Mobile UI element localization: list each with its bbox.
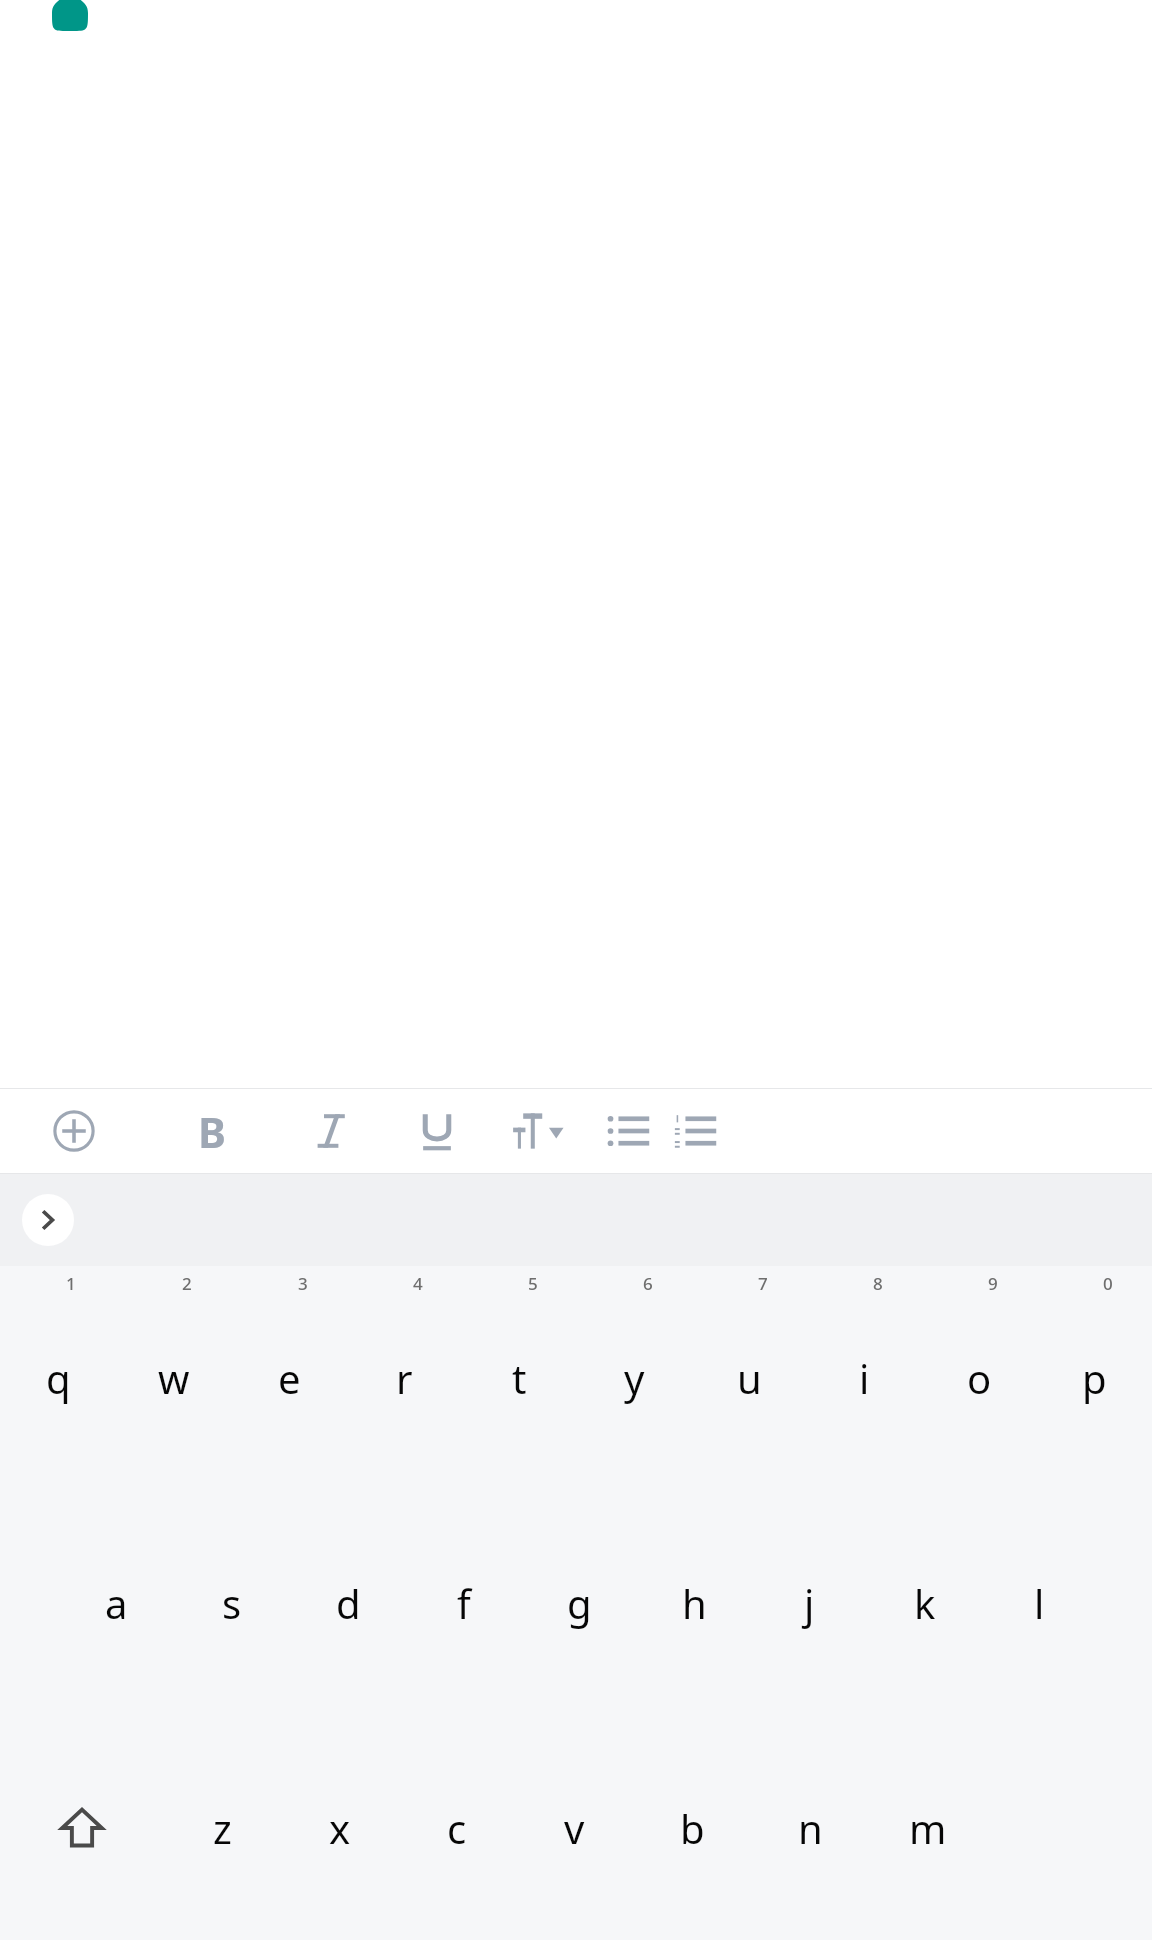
button[interactable]: e	[232, 1266, 347, 1490]
staticText: 1	[66, 1272, 76, 1295]
staticText: e	[278, 1351, 301, 1405]
button[interactable]: More suggestions	[22, 1194, 74, 1246]
staticText: 7	[758, 1272, 768, 1295]
button[interactable]: Underline	[388, 1089, 486, 1173]
staticText: a	[105, 1576, 128, 1630]
staticText: h	[682, 1576, 707, 1630]
button[interactable]: l	[982, 1490, 1097, 1715]
button[interactable]: Shift	[0, 1715, 164, 1940]
staticText: t	[512, 1351, 527, 1405]
button[interactable]: Bulleted list	[593, 1089, 665, 1173]
staticText: 2	[182, 1272, 192, 1295]
staticText: w	[158, 1351, 190, 1405]
staticText: r	[396, 1351, 413, 1405]
staticText: v	[564, 1801, 585, 1855]
staticText: 8	[873, 1272, 883, 1295]
button[interactable]: p	[1037, 1266, 1152, 1490]
staticText: b	[680, 1801, 705, 1855]
button[interactable]: z	[164, 1715, 281, 1940]
staticText: z	[213, 1801, 232, 1855]
staticText: j	[804, 1576, 815, 1630]
staticText: i	[859, 1351, 870, 1405]
button[interactable]: w	[116, 1266, 232, 1490]
staticText: p	[1082, 1351, 1107, 1405]
button[interactable]: n	[751, 1715, 869, 1940]
button[interactable]: f	[406, 1490, 522, 1715]
button[interactable]: y	[577, 1266, 692, 1490]
button[interactable]: Text size	[486, 1089, 593, 1173]
button[interactable]: c	[398, 1715, 515, 1940]
button[interactable]: u	[692, 1266, 807, 1490]
staticText: x	[329, 1801, 351, 1855]
staticText: 5	[528, 1272, 538, 1295]
staticText: s	[222, 1576, 242, 1630]
staticText: 9	[988, 1272, 998, 1295]
staticText: 0	[1103, 1272, 1113, 1295]
button[interactable]: o	[922, 1266, 1037, 1490]
button[interactable]: a	[58, 1490, 174, 1715]
staticText: 6	[643, 1272, 653, 1295]
button[interactable]: q	[0, 1266, 116, 1490]
button[interactable]: m	[869, 1715, 987, 1940]
staticText: f	[457, 1576, 471, 1630]
button[interactable]: k	[867, 1490, 982, 1715]
button[interactable]: j	[752, 1490, 867, 1715]
staticText: g	[567, 1576, 592, 1630]
button[interactable]: h	[637, 1490, 752, 1715]
staticText: k	[914, 1576, 936, 1630]
button[interactable]: r	[347, 1266, 462, 1490]
staticText: q	[46, 1351, 71, 1405]
button[interactable]: b	[633, 1715, 751, 1940]
button[interactable]: t	[462, 1266, 577, 1490]
button[interactable]: d	[290, 1490, 406, 1715]
staticText: d	[336, 1576, 361, 1630]
staticText: o	[967, 1351, 992, 1405]
button[interactable]: v	[515, 1715, 633, 1940]
button[interactable]: x	[281, 1715, 398, 1940]
button[interactable]: g	[522, 1490, 637, 1715]
staticText: 3	[298, 1272, 308, 1295]
button[interactable]: Insert	[0, 1089, 147, 1173]
button[interactable]: s	[174, 1490, 290, 1715]
button[interactable]: Italic	[276, 1089, 388, 1173]
button[interactable]: Bold	[147, 1089, 276, 1173]
staticText: y	[624, 1351, 645, 1405]
staticText: B	[198, 1103, 226, 1160]
button[interactable]: i	[807, 1266, 922, 1490]
staticText: n	[798, 1801, 823, 1855]
staticText: 4	[413, 1272, 423, 1295]
button[interactable]: Numbered list	[665, 1089, 727, 1173]
staticText: u	[737, 1351, 762, 1405]
staticText: l	[1034, 1576, 1045, 1630]
staticText: c	[447, 1801, 467, 1855]
staticText: m	[909, 1801, 947, 1855]
